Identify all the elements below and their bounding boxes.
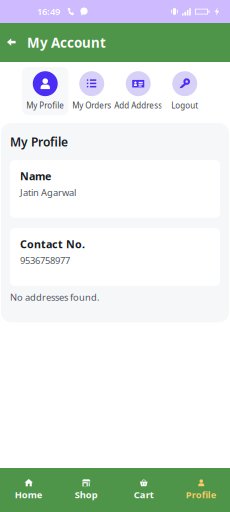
staticText: Name — [20, 169, 51, 183]
staticText: Cart — [134, 488, 154, 501]
staticText: 16:49 — [37, 5, 60, 18]
staticText: My Profile — [10, 134, 68, 150]
button[interactable]: Profile — [172, 468, 230, 512]
button[interactable]: Logout — [161, 67, 208, 115]
button[interactable]: Home — [0, 468, 57, 512]
staticText: My Profile — [26, 100, 64, 111]
button[interactable]: Shop — [57, 468, 115, 512]
button[interactable]: My Orders — [68, 67, 115, 115]
staticText: 9536758977 — [20, 254, 70, 266]
staticText: My Orders — [72, 100, 111, 111]
staticText: No addresses found. — [10, 291, 100, 303]
staticText: Home — [15, 488, 43, 501]
button[interactable]: Back — [2, 23, 21, 62]
staticText: Logout — [171, 100, 198, 111]
staticText: Shop — [75, 488, 98, 501]
staticText: Jatin Agarwal — [20, 186, 76, 198]
button[interactable]: Cart — [115, 468, 172, 512]
staticText: Contact No. — [20, 237, 85, 251]
staticText: My Account — [27, 34, 106, 51]
staticText: Profile — [186, 488, 217, 501]
button[interactable]: Add Address — [115, 67, 161, 115]
button[interactable]: My Profile — [22, 67, 68, 115]
staticText: Add Address — [114, 100, 162, 111]
